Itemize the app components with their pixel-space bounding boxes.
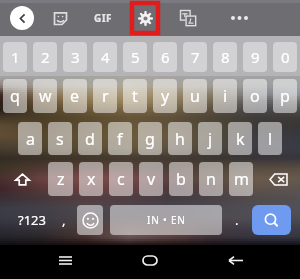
button[interactable]: z (48, 162, 73, 196)
staticText: v (147, 168, 156, 190)
button[interactable]: Shift (2, 162, 43, 196)
button[interactable]: IN • EN (110, 205, 222, 235)
staticText: 3 (71, 47, 80, 67)
button[interactable]: x (79, 162, 103, 196)
staticText: 4 (101, 47, 110, 67)
button[interactable]: 2 (33, 42, 57, 72)
button[interactable]: n (199, 162, 223, 196)
button[interactable]: Backspace (258, 162, 298, 196)
staticText: 0 (281, 47, 290, 67)
button[interactable]: y (153, 79, 177, 113)
button[interactable]: 1 (3, 42, 27, 72)
button[interactable]: 6 (153, 42, 177, 72)
staticText: ?123 (18, 211, 46, 229)
button[interactable]: Back (10, 6, 34, 30)
button[interactable]: 9 (243, 42, 267, 72)
button[interactable]: , (55, 205, 73, 235)
staticText: r (102, 85, 109, 107)
staticText: d (85, 128, 95, 150)
button[interactable]: p (273, 79, 297, 113)
staticText: t (132, 85, 138, 107)
button[interactable]: c (109, 162, 133, 196)
button[interactable]: 0 (273, 42, 297, 72)
staticText: q (10, 85, 20, 107)
button[interactable]: s (48, 122, 72, 155)
button[interactable]: g (138, 122, 162, 155)
staticText: , (62, 211, 66, 229)
button[interactable]: u (183, 79, 207, 113)
button[interactable]: 5 (123, 42, 147, 72)
button[interactable]: . (228, 205, 246, 235)
button[interactable]: q (3, 79, 27, 113)
staticText: 9 (251, 47, 260, 67)
button[interactable]: 8 (213, 42, 237, 72)
button[interactable]: More options (226, 6, 252, 30)
button[interactable]: i (213, 79, 237, 113)
button[interactable]: a (18, 122, 42, 155)
staticText: 2 (41, 47, 50, 67)
staticText: w (39, 85, 52, 107)
button[interactable]: j (198, 122, 222, 155)
button[interactable]: d (78, 122, 102, 155)
staticText: i (223, 85, 228, 107)
staticText: 5 (131, 47, 140, 67)
button[interactable]: e (63, 79, 87, 113)
button[interactable]: 4 (93, 42, 117, 72)
button[interactable]: r (93, 79, 117, 113)
button[interactable]: Back (215, 245, 255, 276)
staticText: e (70, 85, 80, 107)
button[interactable]: Search (252, 205, 291, 235)
button[interactable]: v (139, 162, 163, 196)
button[interactable]: Recents (45, 245, 85, 276)
staticText: s (56, 128, 64, 150)
staticText: f (117, 128, 123, 150)
staticText: n (206, 168, 216, 190)
staticText: y (161, 85, 170, 107)
button[interactable]: 3 (63, 42, 87, 72)
button[interactable]: Settings (130, 1, 160, 35)
staticText: . (235, 211, 239, 229)
button[interactable]: t (123, 79, 147, 113)
staticText: IN • EN (147, 213, 186, 227)
staticText: p (280, 85, 290, 107)
staticText: h (175, 128, 185, 150)
button[interactable]: l (258, 122, 282, 155)
staticText: GIF (94, 11, 112, 25)
button[interactable]: b (169, 162, 193, 196)
button[interactable]: k (228, 122, 252, 155)
staticText: k (236, 128, 245, 150)
button[interactable]: o (243, 79, 267, 113)
staticText: x (87, 168, 96, 190)
staticText: m (234, 168, 249, 190)
staticText: g (145, 128, 155, 150)
staticText: a (26, 128, 35, 150)
staticText: b (176, 168, 186, 190)
staticText: 6 (161, 47, 170, 67)
button[interactable]: f (108, 122, 132, 155)
button[interactable]: Translate (176, 6, 200, 30)
button[interactable]: ?123 (6, 205, 58, 235)
staticText: l (268, 128, 273, 150)
staticText: 7 (191, 47, 200, 67)
staticText: c (117, 168, 125, 190)
staticText: u (190, 85, 200, 107)
button[interactable]: h (168, 122, 192, 155)
button[interactable]: m (229, 162, 253, 196)
staticText: 1 (11, 47, 20, 67)
button[interactable]: Emoji (77, 205, 103, 235)
button[interactable]: Home (130, 245, 170, 276)
button[interactable]: Stickers (48, 6, 72, 30)
staticText: j (208, 128, 213, 150)
staticText: z (57, 168, 65, 190)
button[interactable]: w (33, 79, 57, 113)
button[interactable]: GIF (86, 6, 120, 30)
button[interactable]: 7 (183, 42, 207, 72)
staticText: 8 (221, 47, 230, 67)
staticText: o (250, 85, 260, 107)
